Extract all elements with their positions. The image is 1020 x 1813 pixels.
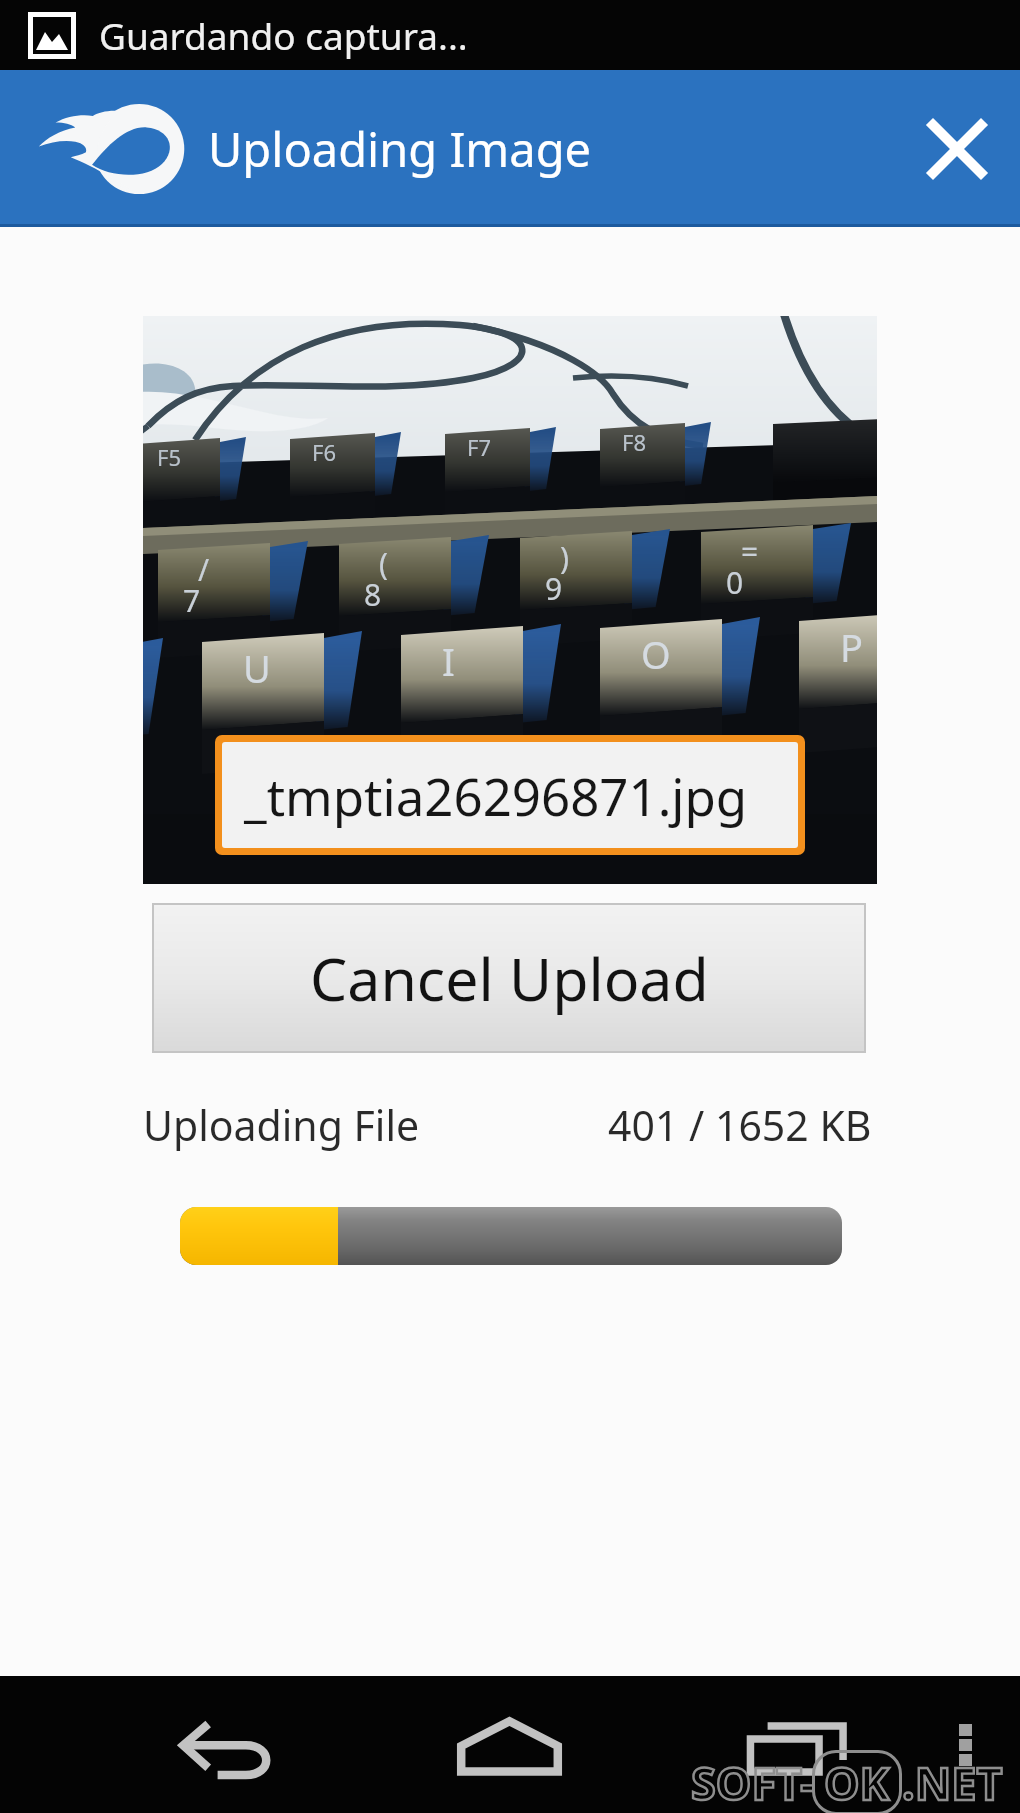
- staticText: Guardando captura...: [99, 10, 468, 60]
- staticText: Uploading File: [143, 1097, 420, 1153]
- staticText: 401 / 1652 KB: [608, 1097, 872, 1153]
- staticText: U: [243, 642, 271, 694]
- staticText: ): [560, 537, 569, 578]
- staticText: F7: [467, 432, 492, 462]
- staticText: F8: [622, 427, 647, 457]
- staticText: _tmptia26296871.jpg: [244, 761, 748, 830]
- staticText: /: [198, 549, 210, 590]
- staticText: P: [840, 621, 863, 673]
- staticText: O: [641, 628, 671, 680]
- staticText: F5: [157, 442, 182, 472]
- staticText: .NET: [902, 1752, 1003, 1813]
- staticText: F6: [312, 437, 337, 467]
- staticText: SOFT-: [691, 1752, 815, 1813]
- staticText: 7: [183, 580, 201, 621]
- staticText: OK: [824, 1752, 890, 1813]
- staticText: I: [442, 635, 455, 687]
- button[interactable]: Home: [427, 1677, 592, 1813]
- button[interactable]: Cancel Upload: [152, 903, 866, 1053]
- button[interactable]: Close: [901, 93, 1013, 205]
- staticText: 8: [364, 574, 382, 615]
- staticText: Uploading Image: [208, 117, 592, 181]
- staticText: Cancel Upload: [310, 938, 709, 1018]
- staticText: 9: [545, 568, 563, 609]
- button[interactable]: Back: [144, 1680, 309, 1813]
- staticText: 0: [726, 562, 744, 603]
- staticText: (: [379, 543, 388, 584]
- button[interactable]: Recent apps: [714, 1680, 879, 1813]
- staticText: =: [741, 531, 759, 572]
- button[interactable]: More options: [920, 1676, 1010, 1813]
